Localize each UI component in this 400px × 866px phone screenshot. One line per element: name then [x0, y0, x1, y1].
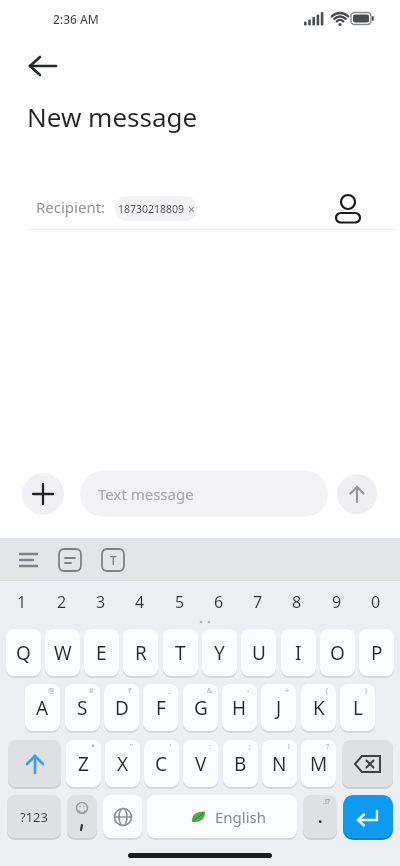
staticText: 2 — [57, 591, 67, 613]
button[interactable] — [67, 795, 97, 838]
button[interactable]: K — [301, 684, 336, 731]
staticText: Text message — [98, 484, 194, 504]
button[interactable]: Text message — [80, 471, 328, 517]
button[interactable]: O — [320, 629, 355, 676]
button[interactable]: L — [340, 684, 375, 731]
button[interactable]: V — [183, 740, 218, 787]
staticText: English — [215, 807, 267, 827]
staticText: + — [285, 686, 290, 696]
staticText: ' — [170, 742, 172, 752]
staticText: : — [209, 742, 211, 752]
staticText: 5 — [175, 591, 185, 613]
staticText: T — [110, 552, 117, 568]
staticText: 4 — [135, 591, 145, 613]
staticText: ?123 — [20, 808, 48, 826]
staticText: J — [276, 695, 282, 721]
staticText: ! — [288, 742, 290, 752]
button[interactable]: G — [183, 684, 218, 731]
staticText: 2:36 AM — [53, 11, 99, 27]
button[interactable]: 9 — [320, 584, 354, 620]
button[interactable] — [330, 190, 364, 226]
button[interactable]: P — [359, 629, 394, 676]
button[interactable]: 1 — [5, 584, 39, 620]
staticText: V — [195, 751, 207, 777]
button[interactable]: W — [45, 629, 80, 676]
staticText: D — [115, 695, 129, 721]
staticText: X — [117, 751, 129, 777]
button[interactable]: N — [262, 740, 297, 787]
button[interactable]: Y — [202, 629, 237, 676]
button[interactable]: H — [222, 684, 257, 731]
button[interactable]: 3 — [84, 584, 118, 620]
button[interactable] — [343, 795, 393, 838]
staticText: ( — [326, 686, 329, 696]
button[interactable]: I — [281, 629, 316, 676]
button[interactable]: E — [84, 629, 119, 676]
button[interactable]: Q — [6, 629, 41, 676]
staticText: 1 — [17, 591, 27, 613]
button[interactable]: U — [241, 629, 276, 676]
staticText: × — [185, 201, 195, 217]
staticText: B — [234, 751, 247, 777]
button[interactable] — [16, 548, 42, 572]
button[interactable]: M — [301, 740, 336, 787]
staticText: L — [353, 695, 363, 721]
button[interactable]: Z — [66, 740, 101, 787]
button[interactable]: 7 — [241, 584, 275, 620]
staticText: 8 — [292, 591, 302, 613]
staticText: . — [318, 806, 323, 828]
button[interactable] — [103, 795, 142, 838]
staticText: # — [89, 686, 94, 696]
staticText: ; — [249, 742, 251, 752]
staticText: U — [252, 640, 266, 666]
staticText: - — [247, 686, 250, 696]
button[interactable] — [58, 548, 82, 572]
staticText: 7 — [253, 591, 263, 613]
staticText: E — [96, 640, 107, 666]
staticText: Recipient: — [36, 197, 106, 217]
button[interactable]: . — [303, 795, 337, 838]
button[interactable] — [8, 740, 61, 787]
button[interactable]: 6 — [202, 584, 236, 620]
button[interactable]: B — [223, 740, 258, 787]
staticText: R — [135, 640, 147, 666]
button[interactable]: 4 — [123, 584, 157, 620]
button[interactable]: D — [104, 684, 139, 731]
button[interactable]: A — [25, 684, 60, 731]
button[interactable]: 2 — [45, 584, 79, 620]
staticText: 3 — [96, 591, 106, 613]
button[interactable]: T — [163, 629, 198, 676]
button[interactable]: 8 — [280, 584, 314, 620]
staticText: ₹ — [128, 686, 133, 696]
staticText: 9 — [332, 591, 342, 613]
button[interactable] — [342, 740, 393, 787]
staticText: ) — [365, 686, 368, 696]
staticText: G — [194, 695, 208, 721]
staticText: I — [295, 640, 302, 666]
button[interactable]: C — [144, 740, 179, 787]
button[interactable]: 0 — [359, 584, 393, 620]
button[interactable]: ?123 — [7, 795, 61, 838]
button[interactable]: F — [143, 684, 178, 731]
button[interactable]: R — [123, 629, 158, 676]
staticText: * — [91, 742, 95, 752]
button[interactable]: 5 — [163, 584, 197, 620]
button[interactable] — [337, 474, 377, 514]
button[interactable]: English — [147, 795, 297, 838]
staticText: 18730218809 — [118, 202, 185, 216]
button[interactable]: 18730218809 — [115, 196, 197, 221]
button[interactable] — [22, 473, 64, 515]
staticText: F — [156, 695, 166, 721]
button[interactable]: J — [261, 684, 296, 731]
button[interactable]: T — [101, 548, 125, 572]
staticText: @ — [48, 686, 55, 696]
staticText: P — [371, 640, 383, 666]
button[interactable]: X — [105, 740, 140, 787]
staticText: H — [232, 695, 247, 721]
staticText: & — [207, 686, 213, 696]
staticText: ? — [326, 742, 330, 752]
staticText: _ — [168, 686, 172, 696]
button[interactable]: S — [65, 684, 100, 731]
button[interactable] — [20, 53, 64, 79]
staticText: 0 — [371, 591, 381, 613]
